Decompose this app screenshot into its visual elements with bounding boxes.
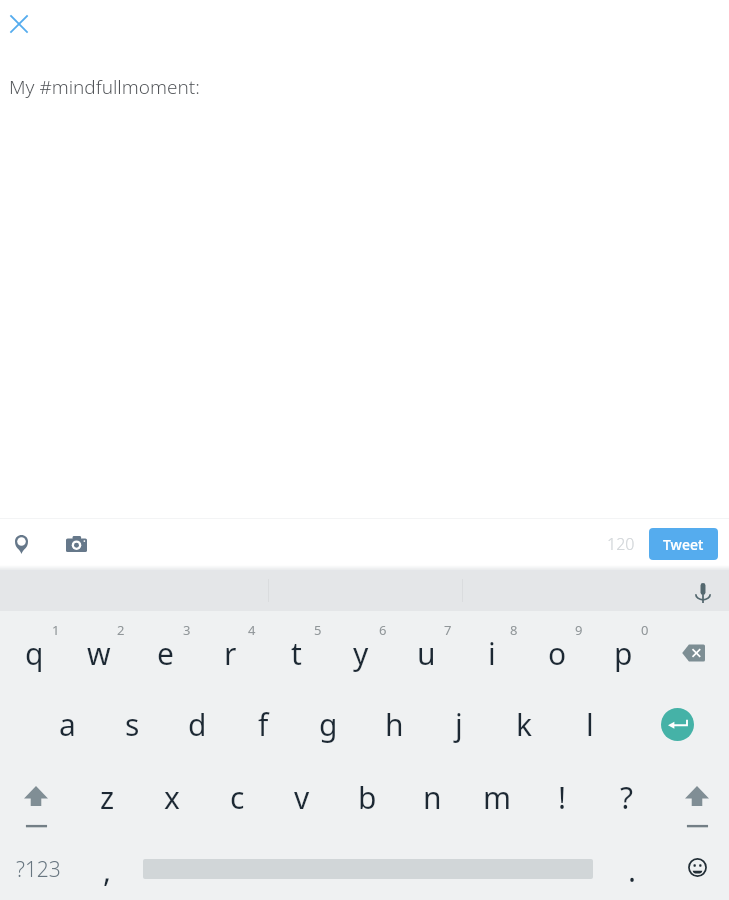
button[interactable]: 7 (394, 620, 458, 686)
staticText: t (291, 633, 302, 674)
button[interactable]: c (205, 764, 269, 830)
staticText: d (188, 704, 207, 745)
staticText: j (455, 704, 463, 745)
staticText: ? (620, 777, 634, 818)
staticText: r (224, 633, 237, 674)
button[interactable]: d (165, 691, 229, 757)
staticText: x (164, 777, 180, 818)
button[interactable]: , (75, 837, 139, 900)
button[interactable]: 4 (198, 620, 262, 686)
button[interactable]: ? (595, 764, 659, 830)
staticText: 3 (183, 621, 191, 637)
button[interactable]: k (492, 691, 556, 757)
staticText: y (353, 633, 369, 674)
button[interactable]: n (400, 764, 464, 830)
staticText: 0 (641, 621, 649, 637)
button[interactable]: Shift (664, 774, 729, 840)
button[interactable]: g (296, 691, 360, 757)
button[interactable]: j (427, 691, 491, 757)
button[interactable]: Shift (3, 774, 69, 840)
staticText: 2 (117, 621, 125, 637)
staticText: n (423, 777, 442, 818)
button[interactable]: Add location (6, 529, 36, 559)
button[interactable]: z (75, 764, 139, 830)
button[interactable]: 1 (2, 620, 66, 686)
button[interactable]: Tweet (649, 528, 718, 560)
button[interactable]: b (335, 764, 399, 830)
button[interactable]: 9 (525, 620, 589, 686)
staticText: 120 (607, 533, 635, 555)
staticText: z (100, 777, 115, 818)
button[interactable]: Backspace (660, 623, 726, 683)
staticText: My #mindfullmoment: (9, 74, 200, 100)
button[interactable]: 0 (591, 620, 655, 686)
staticText: 9 (575, 621, 583, 637)
button[interactable]: x (140, 764, 204, 830)
staticText: w (87, 633, 111, 674)
staticText: h (385, 704, 404, 745)
button[interactable]: ?123 (1, 843, 75, 895)
button[interactable]: l (558, 691, 622, 757)
button[interactable]: ! (530, 764, 594, 830)
staticText: p (614, 633, 633, 674)
button[interactable]: 5 (264, 620, 328, 686)
staticText: 1 (52, 621, 60, 637)
staticText: c (230, 777, 245, 818)
staticText: l (586, 704, 594, 745)
button[interactable]: a (35, 691, 99, 757)
button[interactable]: m (465, 764, 529, 830)
staticText: ?123 (16, 855, 61, 884)
button[interactable]: Add photo (61, 529, 91, 559)
button[interactable]: Voice input (681, 573, 725, 613)
staticText: , (103, 850, 112, 891)
staticText: o (548, 633, 567, 674)
button[interactable]: 3 (133, 620, 197, 686)
button[interactable]: Enter (645, 694, 709, 754)
button[interactable]: v (270, 764, 334, 830)
staticText: f (258, 704, 269, 745)
staticText: b (358, 777, 377, 818)
button[interactable]: f (231, 691, 295, 757)
staticText: i (488, 633, 496, 674)
button[interactable]: 2 (67, 620, 131, 686)
button[interactable]: . (600, 837, 664, 900)
staticText: 7 (444, 621, 452, 637)
button[interactable]: Close (4, 9, 34, 39)
button[interactable]: 6 (329, 620, 393, 686)
staticText: m (483, 777, 512, 818)
button[interactable]: 8 (460, 620, 524, 686)
staticText: k (516, 704, 533, 745)
staticText: e (157, 633, 174, 674)
staticText: q (25, 633, 44, 674)
staticText: s (125, 704, 140, 745)
button[interactable]: s (100, 691, 164, 757)
button[interactable]: h (362, 691, 426, 757)
staticText: g (319, 704, 338, 745)
staticText: 4 (248, 621, 256, 637)
staticText: 8 (510, 621, 518, 637)
staticText: a (59, 704, 76, 745)
staticText: u (417, 633, 436, 674)
staticText: . (628, 850, 637, 891)
staticText: v (294, 777, 310, 818)
staticText: 6 (379, 621, 387, 637)
button[interactable]: Emoji (667, 841, 727, 893)
staticText: 5 (314, 621, 322, 637)
staticText: Tweet (663, 535, 704, 554)
staticText: ! (558, 777, 567, 818)
